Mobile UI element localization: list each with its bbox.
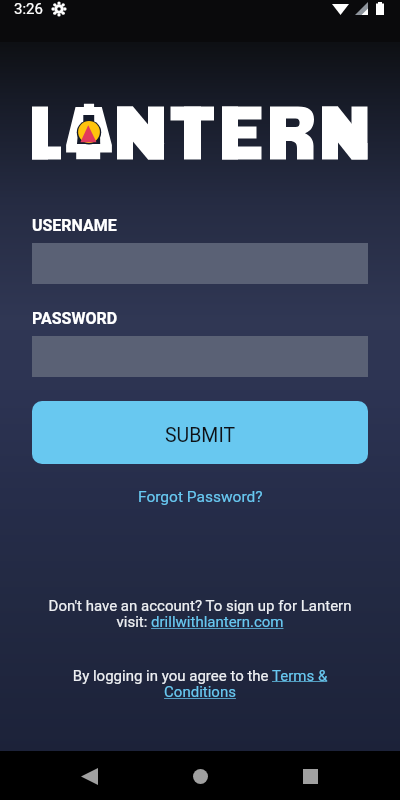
button[interactable]: SUBMIT: [32, 401, 368, 464]
staticText: SUBMIT: [165, 424, 236, 447]
button[interactable]: By logging in you agree to the Terms & C…: [67, 667, 333, 701]
staticText: PASSWORD: [32, 309, 118, 328]
staticText: By logging in you agree to the Terms & C…: [67, 667, 333, 701]
button[interactable]: Recents: [289, 755, 331, 797]
button[interactable]: Back: [68, 755, 110, 797]
button[interactable]: Don't have an account? To sign up for La…: [44, 597, 356, 631]
staticText: Forgot Password?: [138, 488, 263, 506]
button[interactable]: Home: [179, 755, 221, 797]
staticText: USERNAME: [32, 216, 117, 235]
button[interactable]: Forgot Password?: [132, 485, 269, 509]
staticText: Don't have an account? To sign up for La…: [44, 597, 356, 631]
staticText: 3:26: [14, 0, 43, 18]
